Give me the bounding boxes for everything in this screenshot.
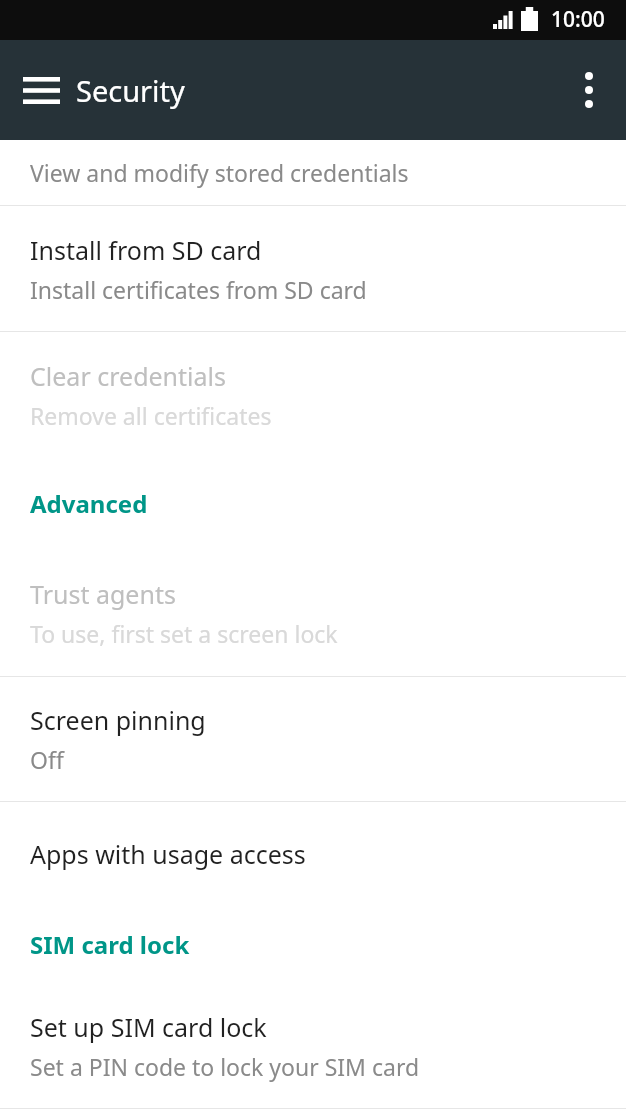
staticText: View and modify stored credentials (30, 157, 409, 188)
staticText: 10:00 (551, 5, 605, 34)
button[interactable]: View and modify stored credentials (0, 140, 626, 205)
staticText: Set a PIN code to lock your SIM card (30, 1051, 420, 1082)
staticText: Trust agents (30, 577, 176, 611)
staticText: SIM card lock (30, 928, 190, 961)
button[interactable]: More options (560, 61, 618, 119)
button[interactable]: Clear credentials (0, 332, 626, 457)
staticText: Install certificates from SD card (30, 274, 367, 305)
button[interactable]: Screen pinning (0, 677, 626, 801)
staticText: Off (30, 744, 64, 775)
staticText: To use, first set a screen lock (30, 618, 338, 649)
button[interactable]: Open navigation drawer (10, 59, 72, 121)
staticText: Clear credentials (30, 359, 226, 393)
staticText: Apps with usage access (30, 837, 306, 871)
staticText: Screen pinning (30, 703, 206, 737)
staticText: Advanced (30, 487, 148, 520)
staticText: Install from SD card (30, 233, 262, 267)
staticText: Remove all certificates (30, 400, 272, 431)
button[interactable]: Trust agents (0, 549, 626, 676)
staticText: Set up SIM card lock (30, 1010, 267, 1044)
button[interactable]: Set up SIM card lock (0, 983, 626, 1108)
button[interactable]: Install from SD card (0, 206, 626, 331)
staticText: Security (76, 71, 185, 110)
button[interactable]: Apps with usage access (0, 802, 626, 905)
